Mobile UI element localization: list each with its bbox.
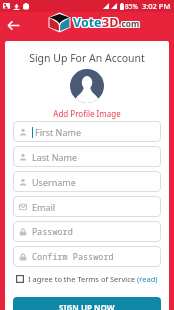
staticText: 3D [101,15,118,32]
staticText: I agree to the Terms of Service [28,274,137,284]
staticText: Last Name [32,151,78,163]
staticText: .com [118,19,139,31]
button[interactable]: Add Profile Image [70,69,104,103]
staticText: .com [119,18,140,30]
staticText: .com [120,19,141,31]
button[interactable]: Back [4,16,23,35]
button[interactable]: Add Profile Image [5,108,169,119]
button[interactable]: Confirm Password [13,246,161,267]
button[interactable]: I agree to the Terms of Service [16,274,158,284]
staticText: SIGN UP NOW [59,302,115,310]
staticText: (read) [137,274,158,284]
staticText: 85% [125,2,138,11]
staticText: Password [32,226,73,238]
staticText: Vote [73,14,102,31]
staticText: Vote [74,13,103,30]
staticText: 3D [102,14,119,31]
staticText: Email [32,201,56,213]
staticText: Confirm Password [32,251,114,263]
staticText: .com [120,17,141,29]
staticText: Sign Up For An Account [5,51,169,65]
button[interactable]: SIGN UP NOW [13,297,161,310]
button[interactable]: First Name [13,121,161,142]
staticText: Vote [74,15,103,32]
staticText: Username [32,176,76,188]
staticText: First Name [35,126,81,138]
button[interactable]: Email [13,196,161,217]
button[interactable]: Username [13,171,161,192]
staticText: 3:02 PM [142,1,171,11]
staticText: .com [118,17,139,29]
button[interactable]: Password [13,221,161,242]
staticText: Vote [72,13,101,30]
staticText: Vote [72,15,101,32]
staticText: 3D [103,13,120,30]
staticText: 3D [103,15,120,32]
button[interactable]: Last Name [13,146,161,167]
staticText: 3D [101,13,118,30]
